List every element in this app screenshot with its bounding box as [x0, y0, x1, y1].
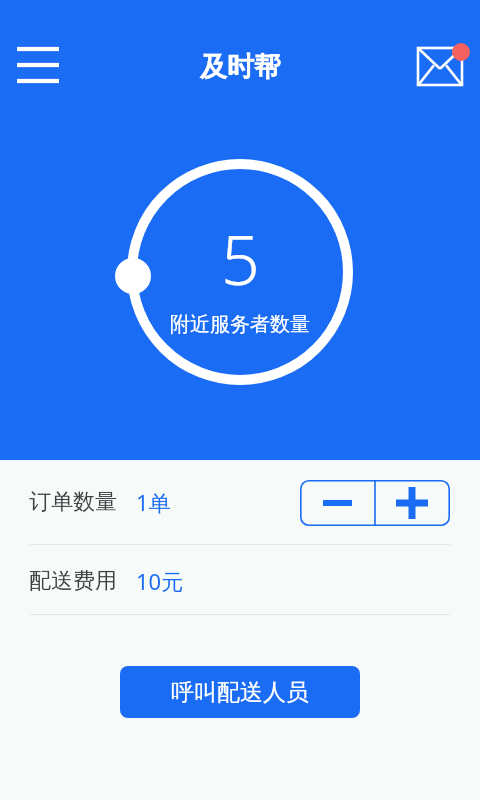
button[interactable]: Decrease order count — [300, 480, 375, 526]
staticText: 1单 — [136, 487, 171, 517]
button[interactable]: 呼叫配送人员 — [120, 666, 360, 718]
button[interactable]: Menu — [8, 38, 68, 94]
staticText: 订单数量 — [29, 488, 117, 516]
button[interactable]: Increase order count — [375, 480, 450, 526]
staticText: 5 — [221, 212, 260, 305]
staticText: 配送费用 — [29, 567, 117, 595]
staticText: 呼叫配送人员 — [171, 678, 309, 707]
staticText: 及时帮 — [200, 50, 281, 84]
staticText: 附近服务者数量 — [170, 312, 310, 337]
staticText: 10元 — [136, 566, 184, 596]
button[interactable]: Messages — [410, 38, 472, 94]
